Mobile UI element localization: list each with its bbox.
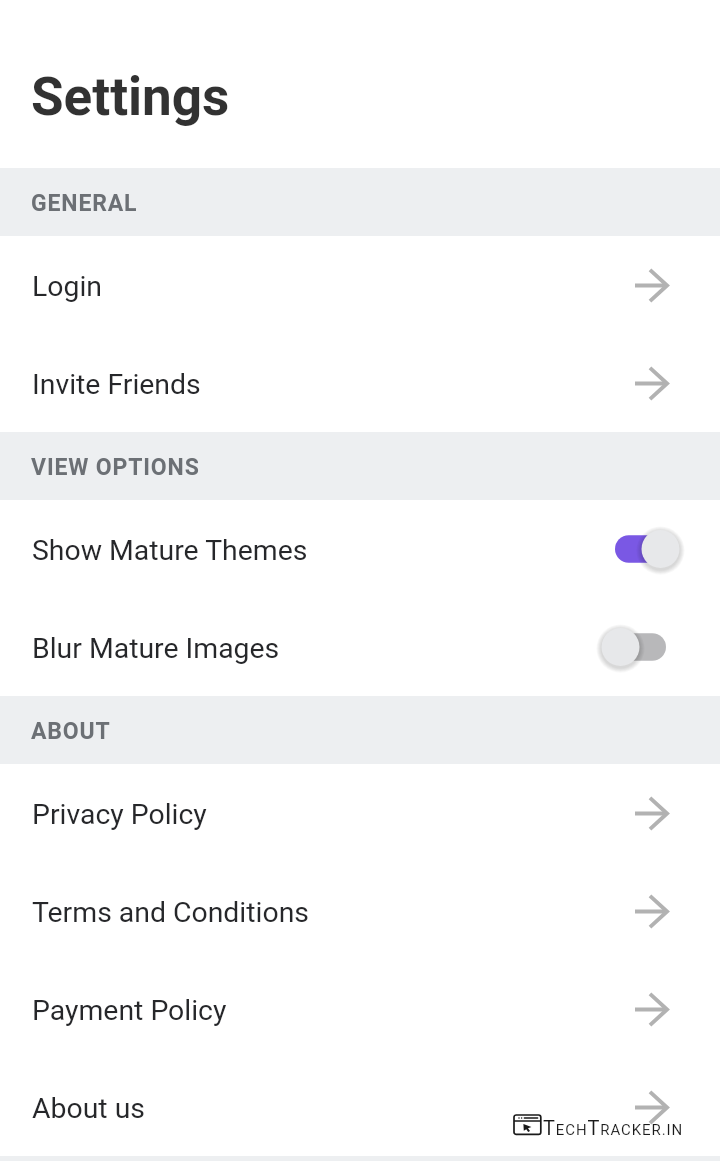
staticText: Settings: [31, 66, 230, 128]
button[interactable]: Show Mature Themes, on: [600, 525, 681, 573]
button[interactable]: Invite Friends: [0, 334, 720, 432]
staticText: Blur Mature Images: [32, 632, 280, 665]
staticText: Terms and Conditions: [32, 896, 309, 929]
button[interactable]: Blur Mature Images, off: [600, 623, 681, 671]
staticText: Payment Policy: [32, 994, 227, 1027]
staticText: TECHTRACKER.IN: [543, 1116, 684, 1139]
staticText: GENERAL: [31, 190, 138, 217]
staticText: ABOUT: [31, 718, 111, 745]
button[interactable]: Privacy Policy: [0, 764, 720, 862]
button[interactable]: Payment Policy: [0, 960, 720, 1058]
staticText: Login: [32, 270, 103, 303]
staticText: Invite Friends: [32, 368, 201, 401]
staticText: Show Mature Themes: [32, 534, 308, 567]
staticText: Privacy Policy: [32, 798, 207, 831]
button[interactable]: Blur Mature Images: [0, 598, 720, 696]
button[interactable]: About us: [0, 1058, 720, 1156]
staticText: VIEW OPTIONS: [31, 454, 200, 481]
button[interactable]: Login: [0, 236, 720, 334]
button[interactable]: Show Mature Themes: [0, 500, 720, 598]
staticText: About us: [32, 1092, 145, 1125]
button[interactable]: Terms and Conditions: [0, 862, 720, 960]
